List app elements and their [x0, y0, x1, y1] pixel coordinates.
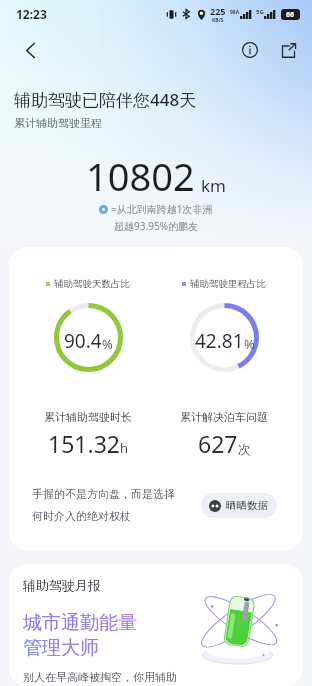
staticText: 辅助驾驶月报	[23, 577, 101, 593]
staticText: 次	[238, 441, 251, 457]
staticText: 10802	[86, 150, 195, 202]
button[interactable]: 晒晒数据	[201, 493, 277, 518]
staticText: =从北到南跨越1次非洲	[111, 202, 213, 216]
staticText: 42.81	[195, 328, 244, 354]
staticText: 别人在早高峰被掏空，你用辅助	[23, 670, 177, 684]
staticText: 手握的不是方向盘，而是选择 何时介入的绝对权杖	[32, 487, 175, 523]
staticText: 5G	[256, 8, 264, 16]
staticText: 累计辅助驾驶时长	[44, 410, 132, 424]
staticText: %	[244, 335, 255, 353]
staticText: 累计辅助驾驶里程	[14, 116, 102, 130]
staticText: 98A	[230, 9, 240, 16]
staticText: 城市通勤能量	[23, 611, 137, 635]
staticText: 12:23	[16, 6, 47, 22]
staticText: 66	[286, 10, 295, 20]
staticText: 225	[210, 5, 226, 17]
staticText: 627	[198, 428, 238, 459]
staticText: 辅助驾驶已陪伴您448天	[14, 88, 197, 111]
staticText: 晒晒数据	[226, 499, 268, 512]
staticText: KB/S	[212, 17, 224, 24]
staticText: 累计解决泊车问题	[180, 410, 268, 424]
staticText: %	[102, 335, 113, 353]
staticText: 超越93.95%的鹏友	[0, 219, 312, 233]
staticText: 90.4	[64, 328, 102, 354]
staticText: 辅助驾驶里程占比	[190, 278, 266, 290]
button[interactable]: Back	[15, 35, 45, 65]
staticText: 管理大师	[23, 636, 99, 660]
staticText: 辅助驾驶天数占比	[54, 278, 130, 290]
button[interactable]: Info	[235, 35, 265, 65]
staticText: km	[201, 174, 226, 197]
button[interactable]: Share	[273, 35, 303, 65]
staticText: 151.32	[48, 428, 120, 459]
staticText: h	[120, 439, 129, 457]
